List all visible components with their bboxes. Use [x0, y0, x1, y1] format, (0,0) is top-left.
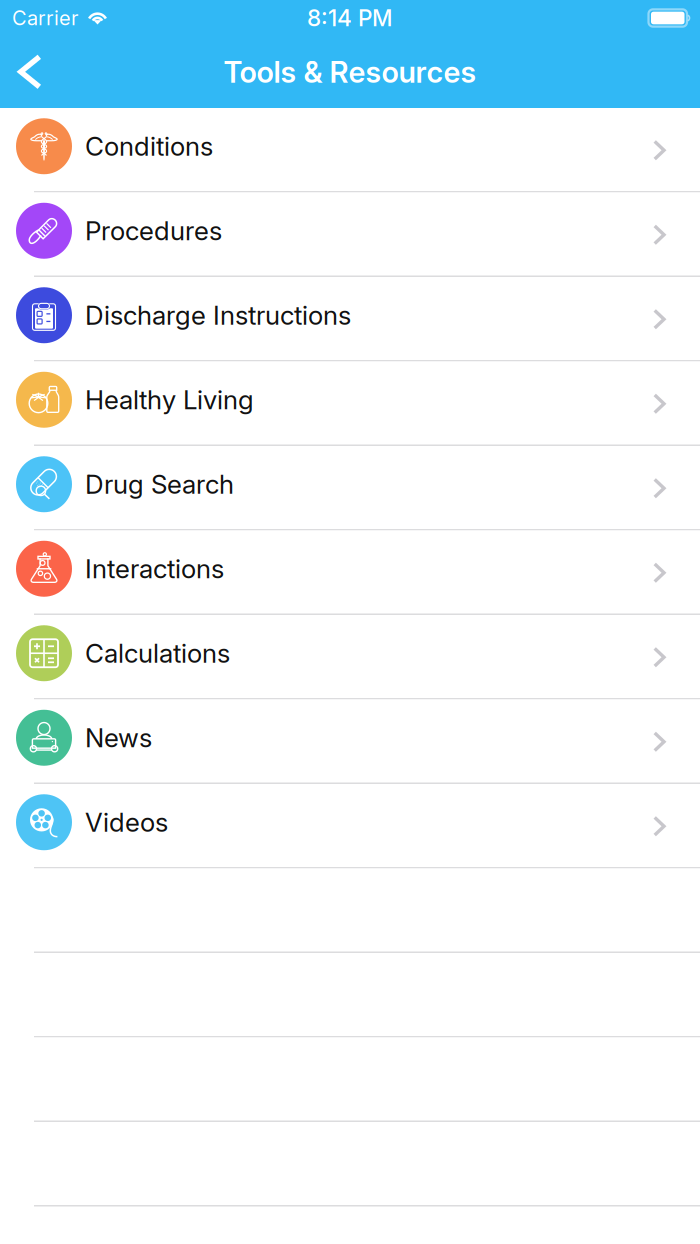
staticText: Discharge Instructions [85, 299, 351, 331]
staticText: 8:14 PM [307, 4, 393, 32]
button[interactable]: News [0, 699, 700, 784]
staticText: Videos [85, 806, 168, 838]
button[interactable]: Procedures [0, 192, 700, 277]
button[interactable]: Conditions [0, 108, 700, 192]
button[interactable]: Discharge Instructions [0, 277, 700, 361]
button[interactable]: Videos [0, 784, 700, 868]
staticText: Healthy Living [85, 384, 254, 415]
button[interactable]: Interactions [0, 530, 700, 615]
staticText: News [85, 722, 152, 753]
staticText: Procedures [85, 215, 222, 246]
staticText: Tools & Resources [223, 54, 476, 90]
staticText: Carrier [12, 6, 78, 30]
button[interactable]: Drug Search [0, 446, 700, 530]
staticText: Drug Search [85, 468, 234, 500]
button[interactable]: Back [0, 36, 58, 108]
staticText: Conditions [85, 130, 213, 162]
button[interactable]: Calculations [0, 615, 700, 699]
button[interactable]: Healthy Living [0, 361, 700, 446]
staticText: Calculations [85, 637, 230, 669]
staticText: Interactions [85, 553, 224, 584]
